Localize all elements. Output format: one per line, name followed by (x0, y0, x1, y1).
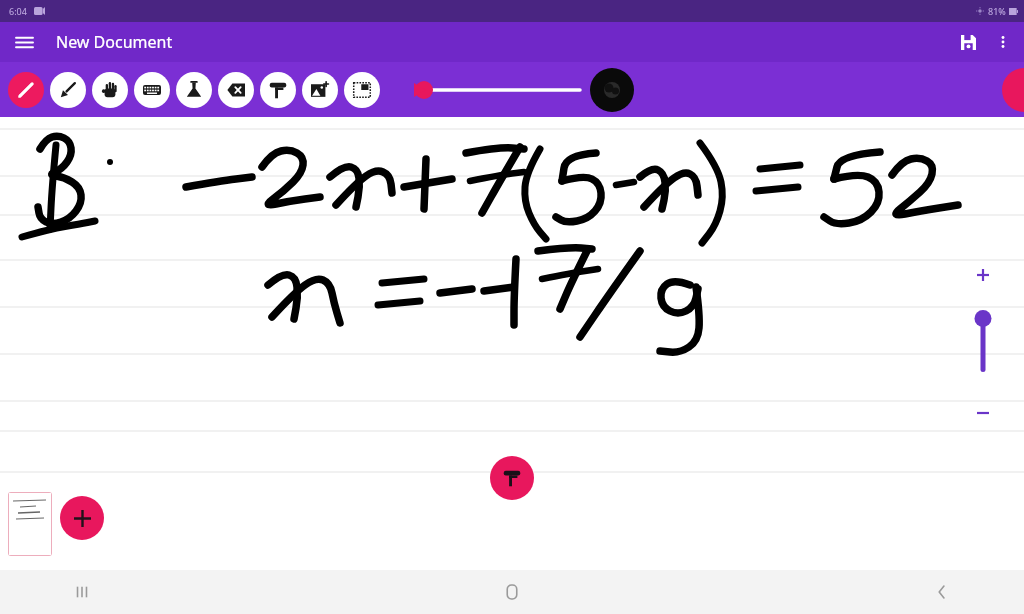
staticText: New Document (56, 31, 173, 53)
button[interactable]: Palette (1002, 68, 1024, 112)
button[interactable]: Recents (60, 570, 104, 614)
button[interactable]: Menu (8, 26, 40, 58)
button[interactable]: Brush (50, 72, 86, 108)
button[interactable]: Add page (60, 496, 104, 540)
button[interactable]: Tools (490, 456, 534, 500)
staticText: 6:04 (9, 5, 27, 17)
button[interactable]: Page 1 (8, 492, 52, 556)
button[interactable]: Eraser (218, 72, 254, 108)
button[interactable]: Zoom out (972, 402, 994, 424)
button[interactable]: Colour (590, 68, 634, 112)
button[interactable]: Save (950, 24, 986, 60)
button[interactable]: Zoom level (970, 304, 996, 384)
button[interactable]: Zoom in (972, 264, 994, 286)
button[interactable]: Fill (260, 72, 296, 108)
button[interactable]: Shapes (176, 72, 212, 108)
button[interactable]: Keyboard (134, 72, 170, 108)
button[interactable]: Stroke thickness (412, 70, 580, 110)
button[interactable]: Select (344, 72, 380, 108)
button[interactable]: Pen (8, 72, 44, 108)
button[interactable]: Pan (92, 72, 128, 108)
button[interactable]: Home (490, 570, 534, 614)
staticText: 81% (988, 5, 1006, 17)
button[interactable]: Back (920, 570, 964, 614)
button[interactable]: Insert image (302, 72, 338, 108)
button[interactable]: More options (986, 25, 1020, 59)
